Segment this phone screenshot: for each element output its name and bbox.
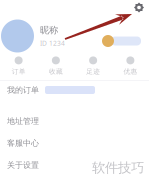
staticText: 订单 <box>12 67 26 76</box>
button[interactable]: Settings <box>131 0 147 15</box>
button[interactable]: 地址管理 <box>0 110 149 132</box>
staticText: 收藏 <box>49 67 63 76</box>
staticText: 关于设置 <box>7 160 39 170</box>
button[interactable]: 优惠 <box>112 56 149 76</box>
staticText: 软件技巧 <box>92 160 144 176</box>
staticText: 客服中心 <box>7 138 39 148</box>
staticText: ID 1234 <box>40 39 65 48</box>
button[interactable]: Membership <box>102 24 141 47</box>
button[interactable]: 客服中心 <box>0 132 149 154</box>
staticText: 我的订单 <box>7 85 39 95</box>
button[interactable]: 我的订单 <box>0 81 149 99</box>
button[interactable]: 收藏 <box>37 56 74 76</box>
staticText: 地址管理 <box>7 116 39 126</box>
staticText: 优惠 <box>123 67 137 76</box>
staticText: 足迹 <box>86 67 100 76</box>
button[interactable]: 关于设置 <box>0 154 149 176</box>
staticText: 昵称 <box>40 24 58 36</box>
button[interactable]: 订单 <box>0 56 37 76</box>
button[interactable]: 足迹 <box>74 56 112 76</box>
